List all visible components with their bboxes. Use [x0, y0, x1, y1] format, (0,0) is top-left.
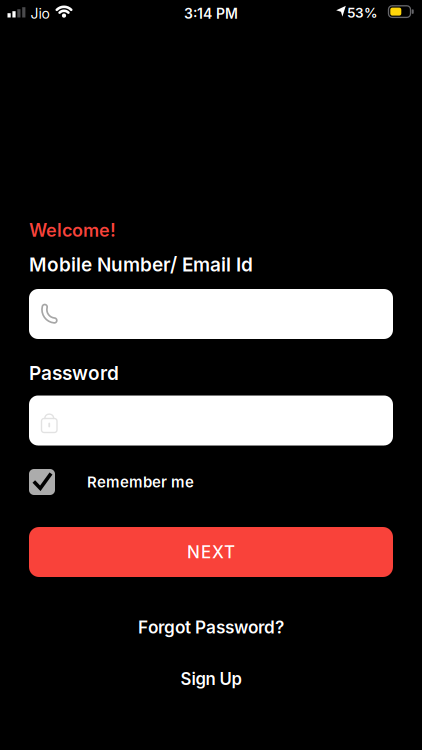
- staticText: Sign Up: [180, 669, 241, 689]
- button[interactable]: Remember me: [29, 469, 194, 495]
- button[interactable]: NEXT: [29, 527, 393, 577]
- staticText: Password: [29, 362, 119, 384]
- staticText: Remember me: [87, 473, 194, 491]
- staticText: Mobile Number/ Email Id: [29, 253, 253, 276]
- staticText: 3:14 PM: [184, 5, 238, 22]
- button[interactable]: Mobile Number or Email Id: [29, 289, 393, 339]
- staticText: Jio: [30, 5, 49, 22]
- staticText: Forgot Password?: [138, 617, 284, 637]
- staticText: 53%: [347, 5, 378, 21]
- staticText: NEXT: [187, 542, 235, 562]
- staticText: Welcome!: [29, 219, 116, 241]
- button[interactable]: Password: [29, 395, 393, 445]
- button[interactable]: Sign Up: [0, 669, 422, 689]
- button[interactable]: Forgot Password?: [0, 617, 422, 637]
